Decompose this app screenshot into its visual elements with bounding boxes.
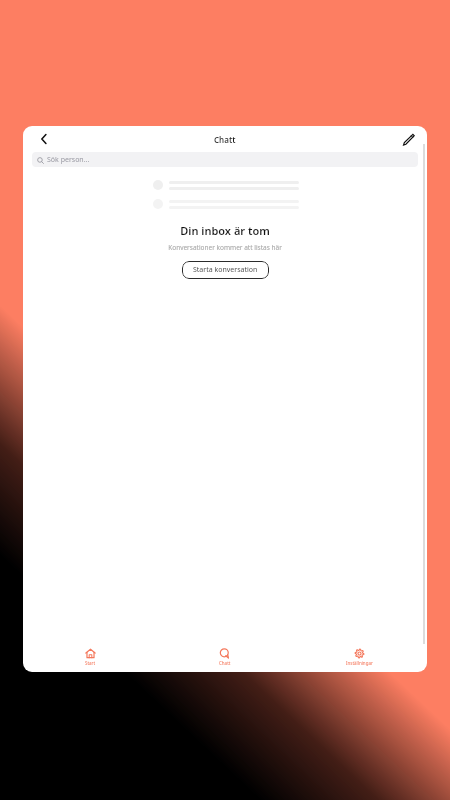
staticText: Konversationer kommer att listas här [168, 243, 282, 252]
staticText: Chatt [214, 134, 236, 145]
button[interactable]: Starta konversation [182, 261, 269, 279]
button[interactable]: Back [33, 128, 55, 150]
staticText: Start [85, 660, 96, 666]
button[interactable]: Chatt [157, 642, 292, 672]
staticText: Sök person... [47, 155, 90, 165]
staticText: Starta konversation [193, 265, 258, 275]
button[interactable]: Inställningar [292, 642, 427, 672]
staticText: Inställningar [346, 660, 373, 666]
button[interactable]: Sök person... [32, 152, 418, 167]
staticText: Din inbox är tom [180, 223, 270, 238]
button[interactable]: New message [397, 128, 419, 150]
button[interactable]: Start [23, 642, 157, 672]
staticText: Chatt [219, 660, 231, 666]
